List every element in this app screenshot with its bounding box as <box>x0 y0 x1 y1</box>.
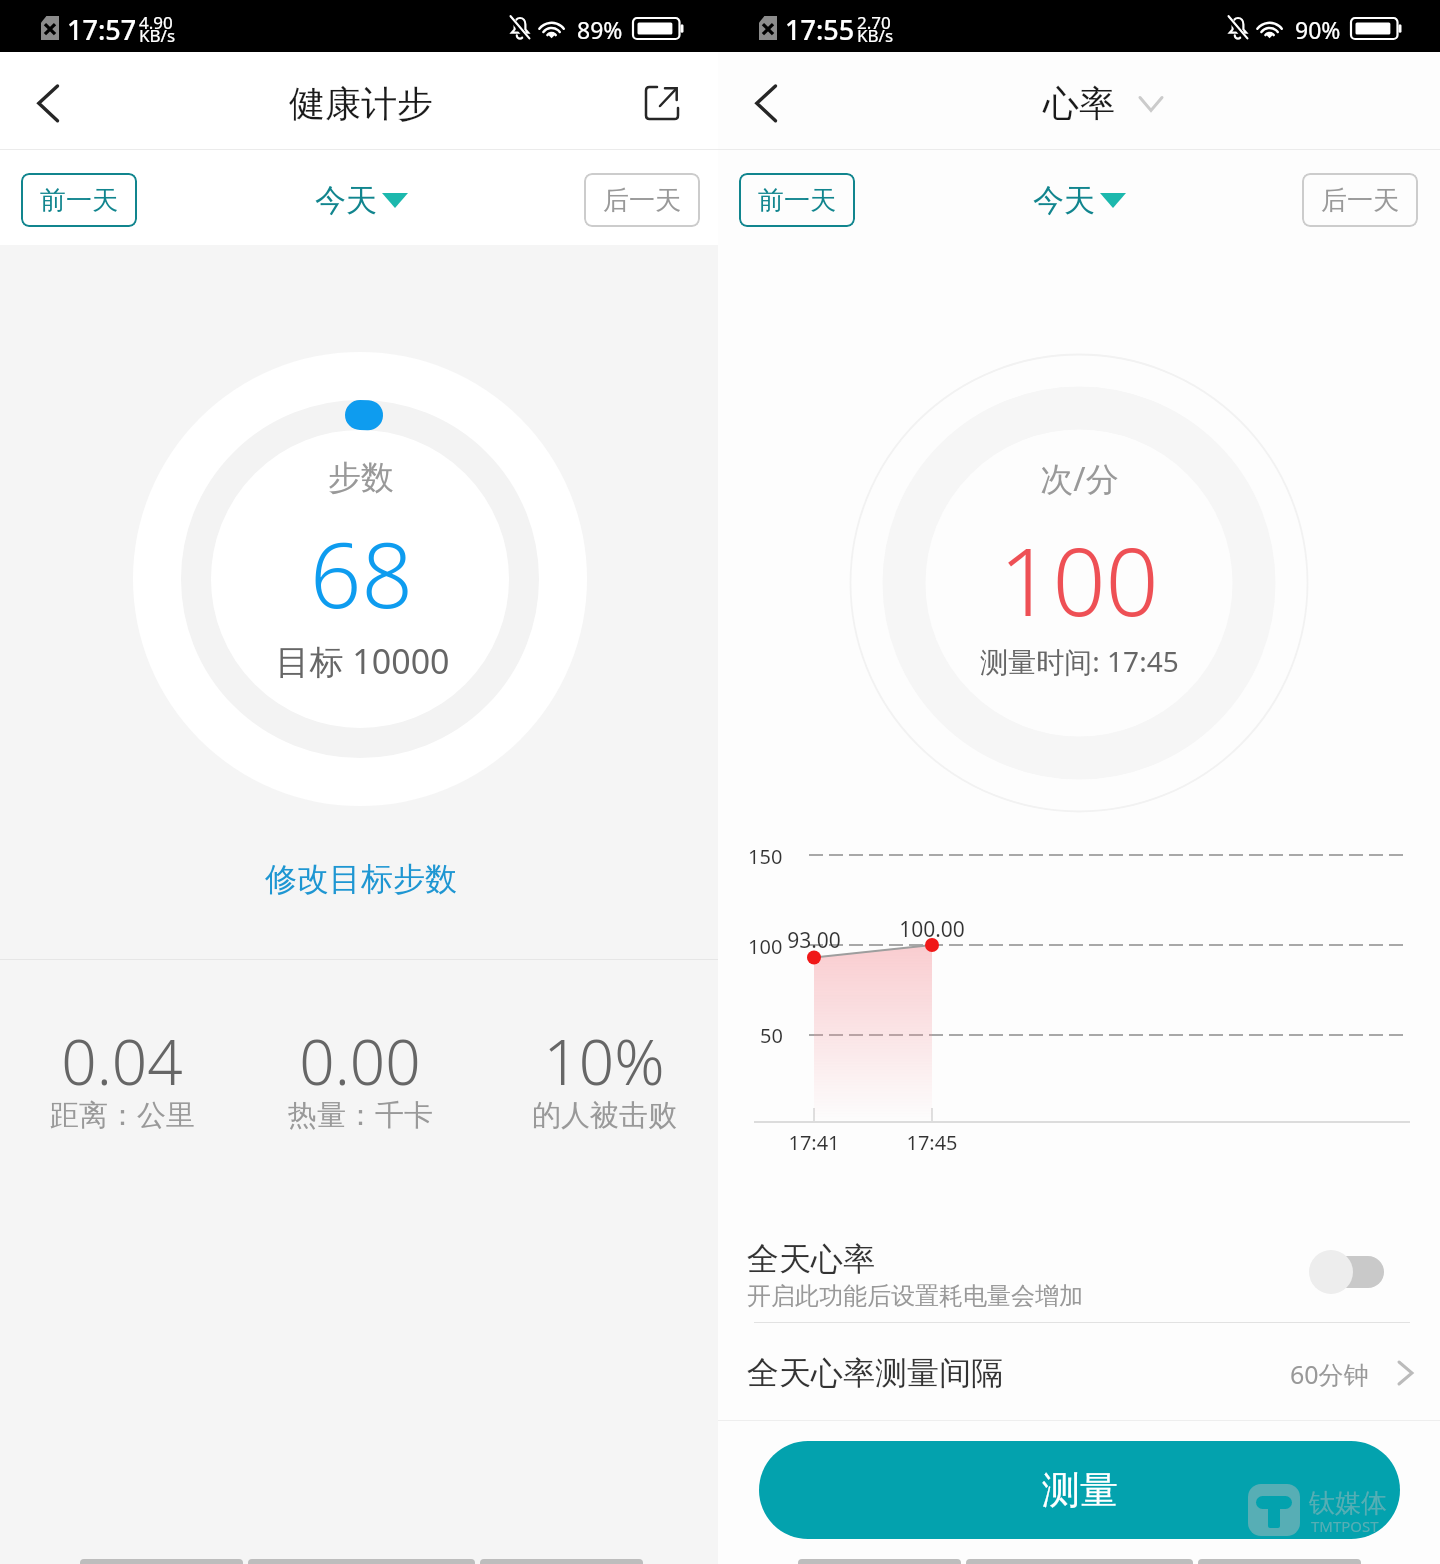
button[interactable] <box>718 1190 1440 1322</box>
staticText: 前一天 <box>40 184 118 217</box>
staticText: 89% <box>577 14 623 45</box>
button[interactable]: Back <box>732 61 802 143</box>
button[interactable]: Toggle all-day heart rate <box>1306 1247 1388 1297</box>
staticText: 心率 <box>1043 81 1115 126</box>
staticText: 0.04 <box>61 1019 183 1103</box>
staticText: 距离：公里 <box>50 1097 195 1134</box>
button[interactable]: Recent apps <box>80 1559 243 1564</box>
staticText: 0.00 <box>299 1019 421 1103</box>
staticText: 150 <box>748 843 783 870</box>
button[interactable]: Share <box>630 71 694 135</box>
staticText: 10% <box>543 1019 665 1103</box>
staticText: 今天 <box>315 181 377 220</box>
staticText: KB/s <box>857 24 894 47</box>
staticText: 4.90 <box>139 11 173 34</box>
button[interactable]: 前一天 <box>739 173 855 227</box>
staticText: 17:57 <box>67 11 137 48</box>
staticText: 全天心率 <box>747 1239 875 1279</box>
button[interactable]: 测量 <box>759 1441 1400 1539</box>
button[interactable]: 修改目标步数 <box>229 848 493 910</box>
staticText: 2.70 <box>857 11 891 34</box>
staticText: 步数 <box>328 457 394 499</box>
staticText: 后一天 <box>1321 184 1399 217</box>
staticText: 后一天 <box>603 184 681 217</box>
button[interactable]: Back <box>14 61 84 143</box>
staticText: 60分钟 <box>1290 1357 1369 1391</box>
staticText: 100 <box>999 517 1159 644</box>
staticText: 今天 <box>1033 181 1095 220</box>
staticText: TMTPOST <box>1311 1516 1379 1536</box>
button[interactable]: 后一天 <box>584 173 700 227</box>
staticText: 17:55 <box>785 11 855 48</box>
staticText: 测量 <box>1042 1466 1118 1514</box>
staticText: 全天心率测量间隔 <box>747 1353 1003 1393</box>
button[interactable]: Expand <box>1121 73 1181 133</box>
button[interactable]: Recent apps <box>798 1559 961 1564</box>
staticText: 目标 10000 <box>275 638 450 684</box>
staticText: 50 <box>760 1022 783 1049</box>
staticText: 健康计步 <box>289 81 433 126</box>
staticText: 热量：千卡 <box>288 1097 433 1134</box>
staticText: 100 <box>748 933 783 960</box>
staticText: 修改目标步数 <box>265 859 457 899</box>
staticText: 68 <box>310 512 413 635</box>
staticText: 100.00 <box>899 915 965 944</box>
button[interactable] <box>718 1340 1440 1418</box>
staticText: 90% <box>1295 14 1341 45</box>
button[interactable]: Back <box>1198 1559 1361 1564</box>
staticText: 17:45 <box>906 1129 958 1156</box>
staticText: 钛媒体 <box>1309 1487 1387 1520</box>
staticText: 93.00 <box>787 926 841 955</box>
staticText: KB/s <box>139 24 176 47</box>
button[interactable]: Back <box>480 1559 643 1564</box>
button[interactable]: Home <box>966 1559 1193 1564</box>
staticText: 开启此功能后设置耗电量会增加 <box>747 1281 1083 1311</box>
button[interactable]: 后一天 <box>1302 173 1418 227</box>
staticText: 的人被击败 <box>532 1097 677 1134</box>
button[interactable]: 今天 <box>291 170 431 230</box>
staticText: 前一天 <box>758 184 836 217</box>
button[interactable]: Home <box>248 1559 475 1564</box>
staticText: 17:41 <box>788 1129 840 1156</box>
staticText: 测量时间: 17:45 <box>980 642 1179 680</box>
button[interactable]: 今天 <box>1009 170 1149 230</box>
staticText: 次/分 <box>1040 456 1119 501</box>
button[interactable]: 前一天 <box>21 173 137 227</box>
